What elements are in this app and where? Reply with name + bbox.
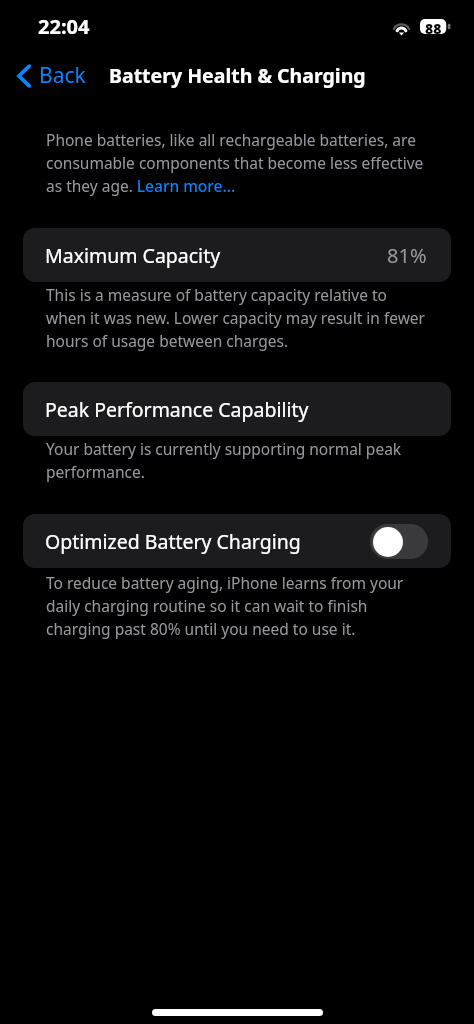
staticText: Maximum Capacity [45, 242, 221, 269]
staticText: Phone batteries, like all rechargeable b… [46, 129, 429, 197]
button[interactable]: Peak Performance Capability [23, 382, 451, 436]
button[interactable]: Back [0, 55, 98, 96]
staticText: Your battery is currently supporting nor… [46, 438, 429, 483]
staticText: This is a measure of battery capacity re… [46, 284, 429, 352]
staticText: 88 [425, 19, 442, 34]
staticText: To reduce battery aging, iPhone learns f… [46, 572, 429, 640]
button[interactable]: Maximum Capacity [23, 228, 451, 282]
button[interactable]: Optimized Battery Charging toggle, off [370, 524, 428, 559]
staticText: Peak Performance Capability [45, 396, 309, 423]
staticText: 22:04 [38, 13, 90, 40]
staticText: Battery Health & Charging [109, 62, 366, 89]
staticText: Back [39, 61, 86, 90]
button[interactable]: Optimized Battery Charging [23, 514, 451, 568]
button[interactable]: Phone batteries, like all rechargeable b… [46, 129, 429, 197]
staticText: 81% [387, 242, 427, 269]
staticText: Optimized Battery Charging [45, 528, 301, 555]
